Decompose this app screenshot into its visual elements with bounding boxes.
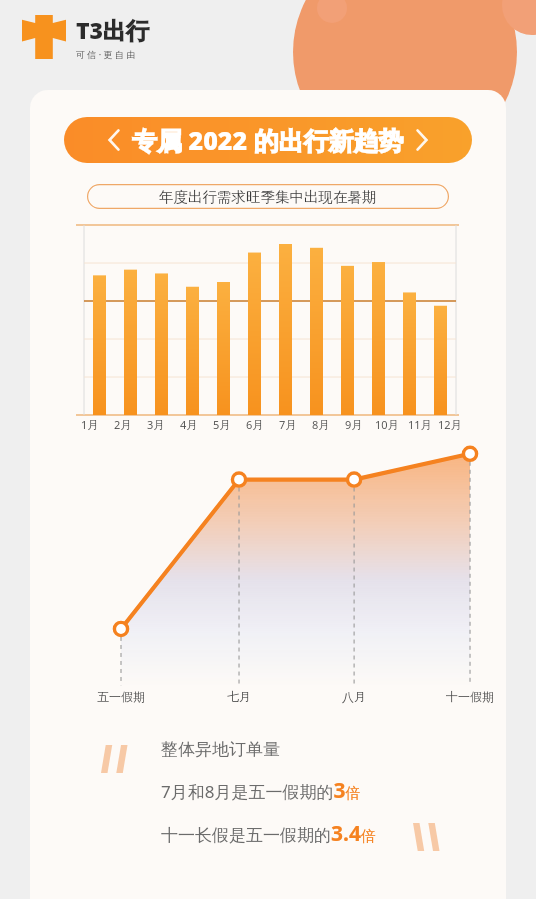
staticText: 年度出行需求旺季集中出现在暑期 <box>159 188 377 206</box>
staticText: 6月 <box>246 417 264 432</box>
staticText: 9月 <box>345 417 363 432</box>
staticText: 整体异地订单量 <box>161 739 280 760</box>
staticText: 八月 <box>342 689 366 704</box>
button[interactable]: 年度出行需求旺季集中出现在暑期 <box>87 184 449 209</box>
staticText: 2月 <box>114 417 132 432</box>
staticText: 5月 <box>213 417 231 432</box>
staticText: 3月 <box>147 417 165 432</box>
staticText: 11月 <box>408 417 432 432</box>
staticText: 12月 <box>438 417 462 432</box>
staticText: 可 信 · 更 自 由 <box>76 48 136 60</box>
button[interactable]: 专属 2022 的出行新趋势 <box>64 117 472 163</box>
staticText: 1月 <box>81 417 99 432</box>
staticText: 7月 <box>279 417 297 432</box>
staticText: 8月 <box>312 417 330 432</box>
staticText: 4月 <box>180 417 198 432</box>
staticText: 10月 <box>375 417 399 432</box>
staticText: 五一假期 <box>97 689 145 704</box>
button[interactable]: T3出行 logo <box>22 14 150 60</box>
staticText: 7月和8月是五一假期的3倍 <box>161 776 361 805</box>
staticText: 十一假期 <box>446 689 494 704</box>
staticText: T3出行 <box>76 14 150 45</box>
staticText: 七月 <box>227 689 251 704</box>
staticText: 十一长假是五一假期的3.4倍 <box>161 819 376 848</box>
staticText: 专属 2022 的出行新趋势 <box>132 123 404 157</box>
